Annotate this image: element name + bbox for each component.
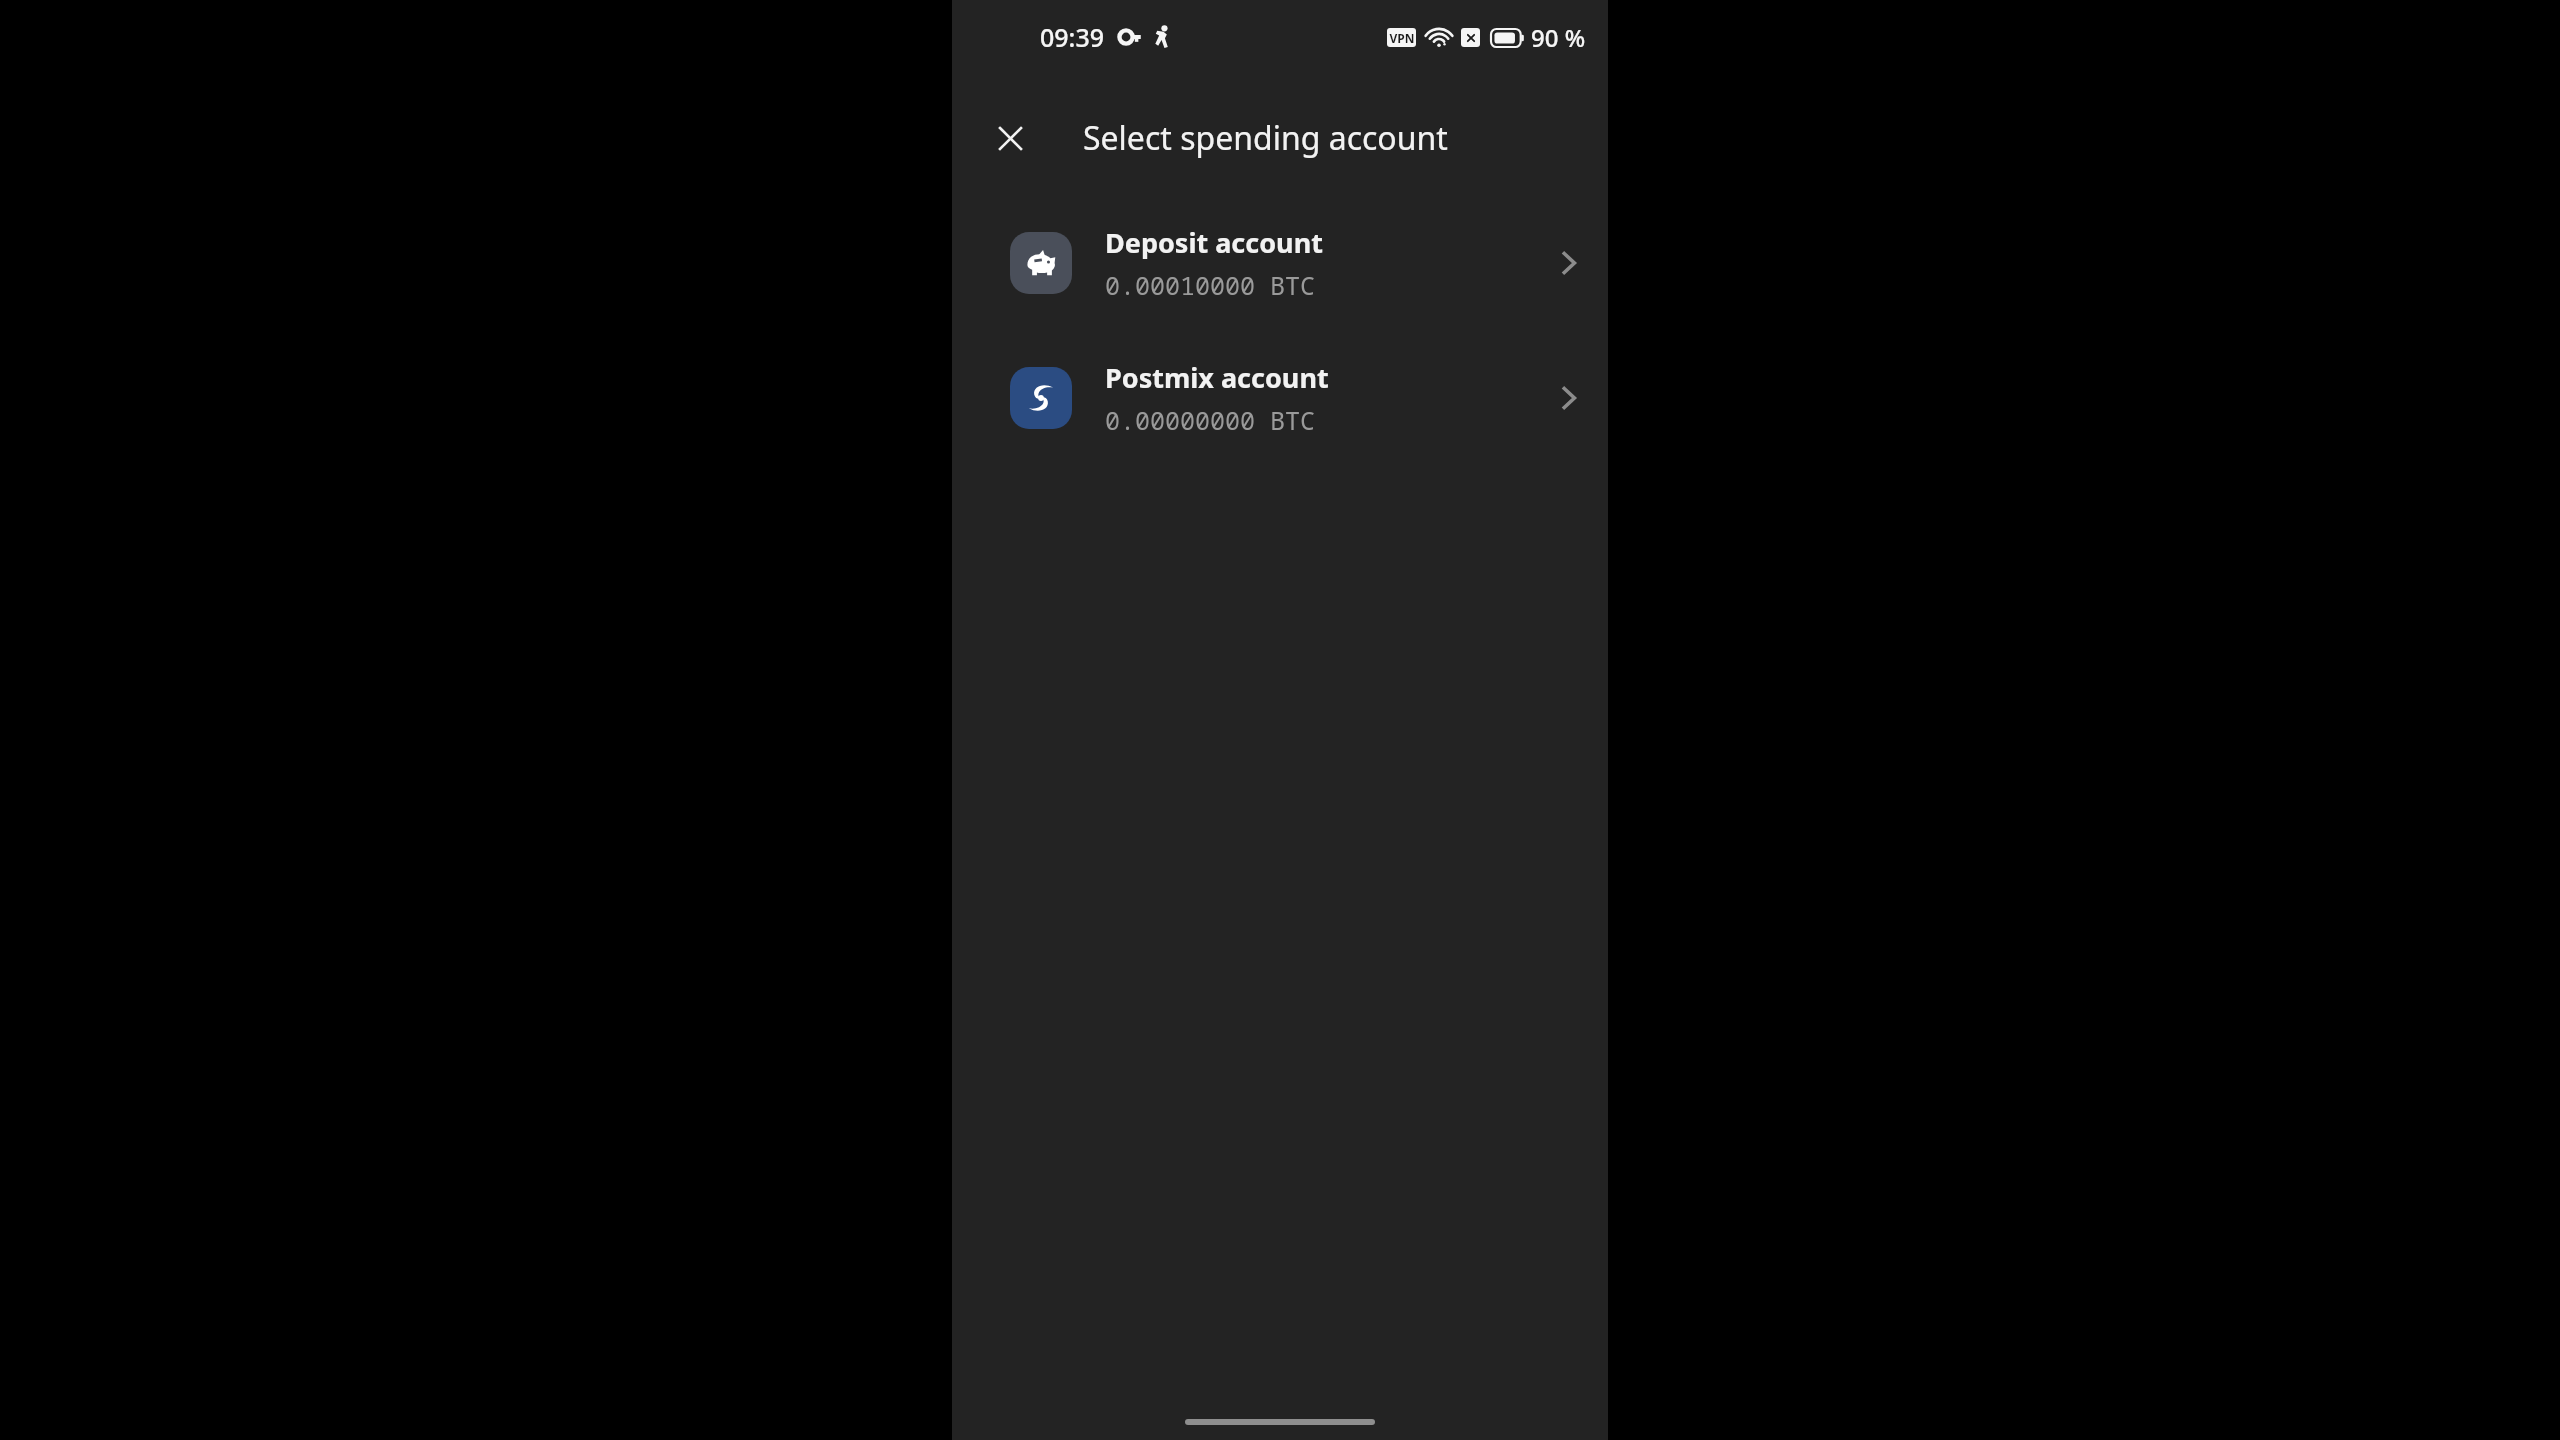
other: Open Postmix account [1552,381,1586,415]
staticText: VPN [1389,30,1415,46]
staticText: Deposit account [1105,224,1323,261]
button[interactable]: Close [988,116,1032,160]
staticText: Postmix account [1105,359,1329,396]
other: Open Deposit account [1552,246,1586,280]
button[interactable]: Deposit account [952,213,1608,313]
staticText: Select spending account [1083,116,1448,160]
staticText: BTC [1270,403,1316,437]
staticText: 0.00000000 [1105,403,1256,437]
staticText: BTC [1270,268,1316,302]
staticText: 09:39 [1040,20,1105,54]
button[interactable]: Postmix account [952,348,1608,448]
staticText: 90 % [1531,21,1586,54]
staticText: 0.00010000 [1105,268,1256,302]
